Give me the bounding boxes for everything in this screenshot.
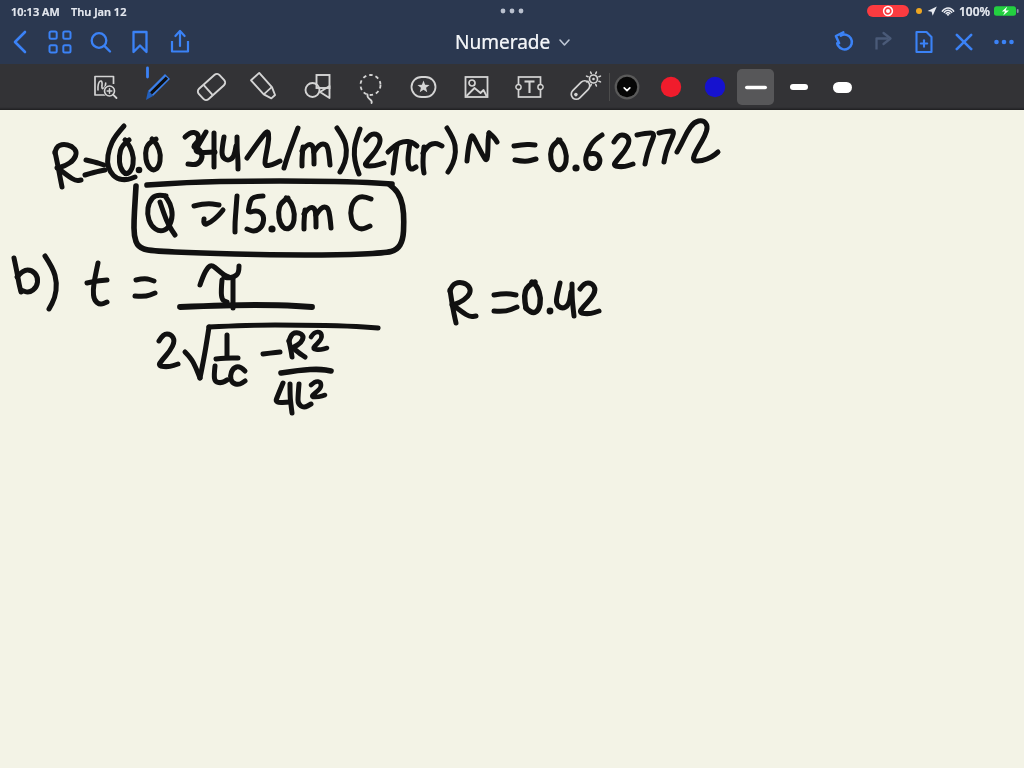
button[interactable]: Redo [864,22,904,62]
button[interactable]: Medium stroke [780,64,817,110]
button[interactable]: Pages [40,22,80,62]
button[interactable]: More [984,22,1024,62]
button[interactable]: Blue [693,65,737,109]
button[interactable]: Pen [132,64,185,110]
button[interactable]: Lasso [344,64,397,110]
button[interactable]: Red [649,65,693,109]
button[interactable]: Share [160,22,200,62]
button[interactable]: New page [904,22,944,62]
button[interactable]: Lasso search [79,64,132,110]
button[interactable]: Magic [556,64,609,110]
button[interactable]: Image [450,64,503,110]
staticText: 100% [959,3,991,19]
button[interactable]: Undo [824,22,864,62]
button[interactable]: Search [80,22,120,62]
button[interactable]: Shapes [291,64,344,110]
staticText: 10:13 AM [11,4,60,19]
button[interactable]: Black [605,65,649,109]
staticText: Numerade [455,29,551,55]
button[interactable]: Sticker [397,64,450,110]
button[interactable]: Numerade [447,25,577,59]
staticText: Thu Jan 12 [71,4,127,19]
button[interactable]: Bookmark [120,22,160,62]
button[interactable]: Text [503,64,556,110]
button[interactable]: Eraser [185,64,238,110]
button[interactable]: Highlighter [238,64,291,110]
button[interactable]: Close [944,22,984,62]
button[interactable]: Thin stroke [737,69,774,105]
button[interactable]: Back [0,22,40,62]
button[interactable]: Thick stroke [824,64,861,110]
